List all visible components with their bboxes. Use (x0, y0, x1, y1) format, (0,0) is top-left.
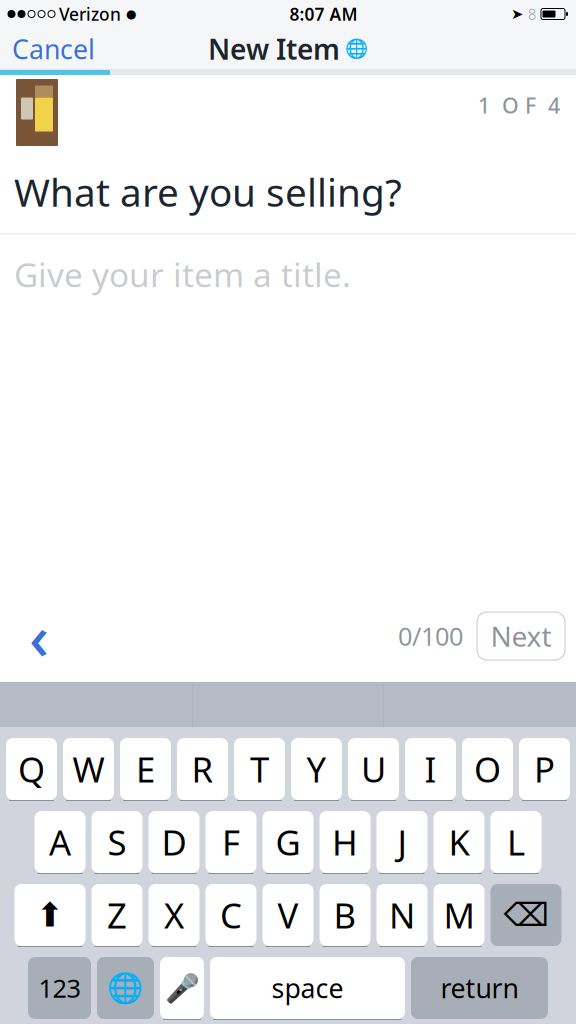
staticText: Q (18, 746, 45, 792)
staticText: New Item (208, 30, 340, 68)
button[interactable]: space (210, 957, 405, 1019)
button[interactable]: T (234, 738, 285, 800)
staticText: O (474, 746, 501, 792)
staticText: Verizon (59, 2, 121, 25)
staticText: Y (306, 746, 326, 792)
staticText: 123 (38, 971, 80, 1005)
staticText: 🎤 (164, 972, 199, 1004)
staticText: T (250, 746, 269, 792)
button[interactable]: Next (477, 612, 565, 660)
staticText: J (397, 819, 406, 865)
staticText: W (72, 746, 104, 792)
staticText: X (164, 892, 184, 938)
button[interactable]: H (319, 811, 370, 873)
button[interactable]: Back (11, 606, 67, 666)
button[interactable]: C (205, 884, 256, 946)
button[interactable]: P (519, 738, 570, 800)
button[interactable]: K (433, 811, 484, 873)
staticText: G (275, 819, 300, 865)
button[interactable]: Y (291, 738, 342, 800)
staticText: return (440, 970, 518, 1006)
button[interactable]: Dictation (160, 957, 204, 1019)
button[interactable]: Shift (14, 884, 85, 946)
button[interactable]: Z (91, 884, 142, 946)
staticText: 🌐 (345, 38, 368, 60)
button[interactable]: X (148, 884, 199, 946)
staticText: P (534, 746, 555, 792)
button[interactable]: U (348, 738, 399, 800)
button[interactable]: D (148, 811, 199, 873)
staticText: K (448, 819, 469, 865)
staticText: ⌫ (503, 897, 548, 933)
staticText: 8:07 AM (289, 2, 357, 25)
staticText: I (424, 746, 436, 792)
button[interactable]: 123 (28, 957, 91, 1019)
staticText: ➤ (511, 6, 523, 22)
button[interactable]: B (319, 884, 370, 946)
staticText: ‹ (29, 595, 49, 677)
staticText: A (49, 819, 71, 865)
staticText: L (507, 819, 525, 865)
staticText: 1 O F 4 (478, 91, 560, 119)
staticText: F (222, 819, 240, 865)
staticText: 8 (528, 4, 536, 24)
button[interactable]: G (262, 811, 313, 873)
staticText: H (332, 819, 358, 865)
staticText: What are you selling? (14, 166, 402, 217)
staticText: 🌐 (107, 971, 144, 1005)
staticText: E (136, 746, 155, 792)
button[interactable]: W (63, 738, 114, 800)
staticText: S (107, 819, 126, 865)
staticText: Next (490, 617, 551, 655)
button[interactable]: F (205, 811, 256, 873)
staticText: C (220, 892, 242, 938)
staticText: Z (107, 892, 127, 938)
button[interactable]: L (490, 811, 541, 873)
button[interactable]: Cancel (2, 23, 105, 75)
staticText: D (161, 819, 186, 865)
staticText: ● (126, 7, 136, 21)
button[interactable]: R (177, 738, 228, 800)
button[interactable]: S (91, 811, 142, 873)
staticText: 0/100 (398, 619, 463, 653)
staticText: V (277, 892, 298, 938)
button[interactable]: Give your item a title. (0, 234, 576, 294)
button[interactable]: Item photo (16, 79, 58, 146)
button[interactable]: V (262, 884, 313, 946)
staticText: Give your item a title. (14, 252, 351, 296)
staticText: U (361, 746, 386, 792)
button[interactable]: O (462, 738, 513, 800)
button[interactable]: Switch keyboard (97, 957, 154, 1019)
staticText: M (443, 892, 474, 938)
staticText: ⬆ (36, 896, 64, 934)
staticText: Cancel (12, 31, 95, 67)
staticText: R (191, 746, 213, 792)
staticText: N (389, 892, 415, 938)
button[interactable]: I (405, 738, 456, 800)
staticText: B (333, 892, 356, 938)
button[interactable]: E (120, 738, 171, 800)
staticText: space (271, 970, 343, 1006)
button[interactable]: N (376, 884, 427, 946)
button[interactable]: Q (6, 738, 57, 800)
button[interactable]: Delete (490, 884, 561, 946)
button[interactable]: J (376, 811, 427, 873)
button[interactable]: A (34, 811, 85, 873)
button[interactable]: return (411, 957, 548, 1019)
button[interactable]: M (433, 884, 484, 946)
